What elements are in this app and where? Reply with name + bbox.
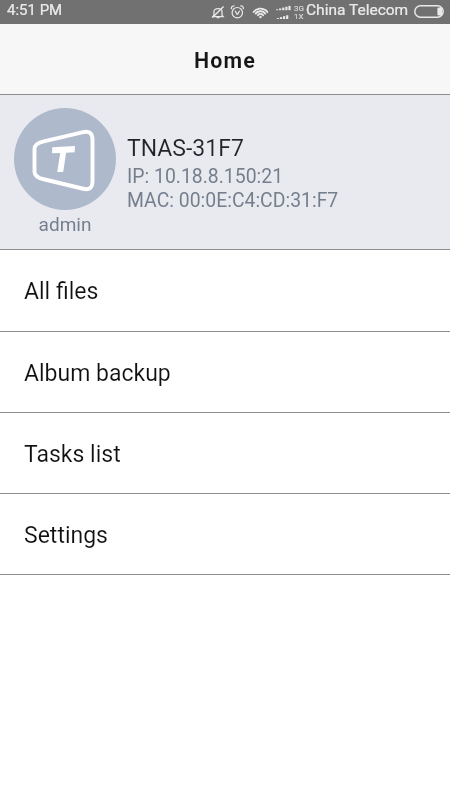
staticText: All files (24, 278, 99, 305)
staticText: admin (14, 213, 116, 235)
staticText: China Telecom (306, 1, 409, 19)
button[interactable]: Settings (0, 494, 450, 574)
other: Battery (414, 5, 444, 18)
other: Alarm set (231, 5, 244, 19)
staticText: MAC: 00:0E:C4:CD:31:F7 (127, 189, 339, 212)
staticText: Home (194, 48, 256, 73)
other: Silent mode (211, 5, 225, 19)
staticText: Settings (24, 522, 108, 549)
staticText: IP: 10.18.8.150:21 (127, 165, 284, 188)
other: TNAS device avatar (14, 108, 116, 210)
staticText: Album backup (24, 360, 171, 387)
staticText: 1X (294, 12, 304, 21)
button[interactable]: All files (0, 250, 450, 330)
other: Mobile signal 3G (276, 4, 304, 20)
staticText: 4:51 PM (7, 1, 63, 19)
button[interactable]: TNAS device avatar (0, 95, 450, 249)
staticText: Tasks list (24, 441, 121, 468)
button[interactable]: Album backup (0, 332, 450, 412)
button[interactable]: Tasks list (0, 413, 450, 493)
other: Wi-Fi connected (252, 5, 269, 20)
staticText: 3G (294, 4, 304, 13)
staticText: TNAS-31F7 (127, 135, 244, 162)
